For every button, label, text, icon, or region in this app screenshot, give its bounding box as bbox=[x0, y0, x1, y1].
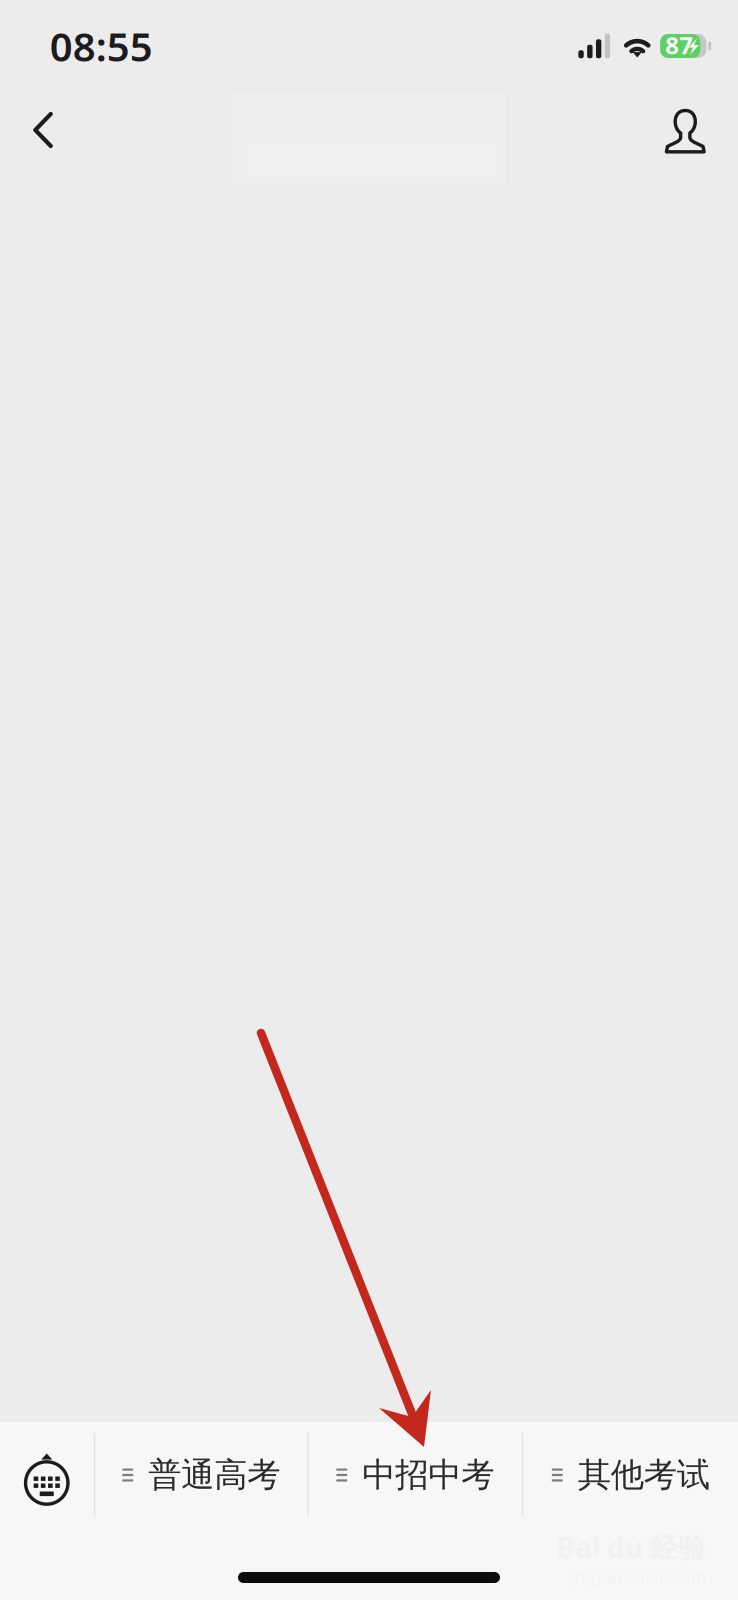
staticText: 普通高考 bbox=[148, 1454, 280, 1495]
staticText: 中招中考 bbox=[362, 1454, 494, 1495]
button[interactable]: 普通高考 bbox=[95, 1422, 307, 1528]
staticText: 其他考试 bbox=[578, 1454, 710, 1495]
staticText: 08:55 bbox=[50, 19, 153, 72]
button[interactable]: 中招中考 bbox=[309, 1422, 522, 1528]
button[interactable]: Keyboard bbox=[0, 1422, 94, 1528]
button[interactable]: Profile bbox=[648, 92, 722, 184]
button[interactable]: Back bbox=[12, 92, 82, 184]
staticText: 87 bbox=[665, 29, 693, 61]
button[interactable]: 其他考试 bbox=[523, 1422, 738, 1528]
